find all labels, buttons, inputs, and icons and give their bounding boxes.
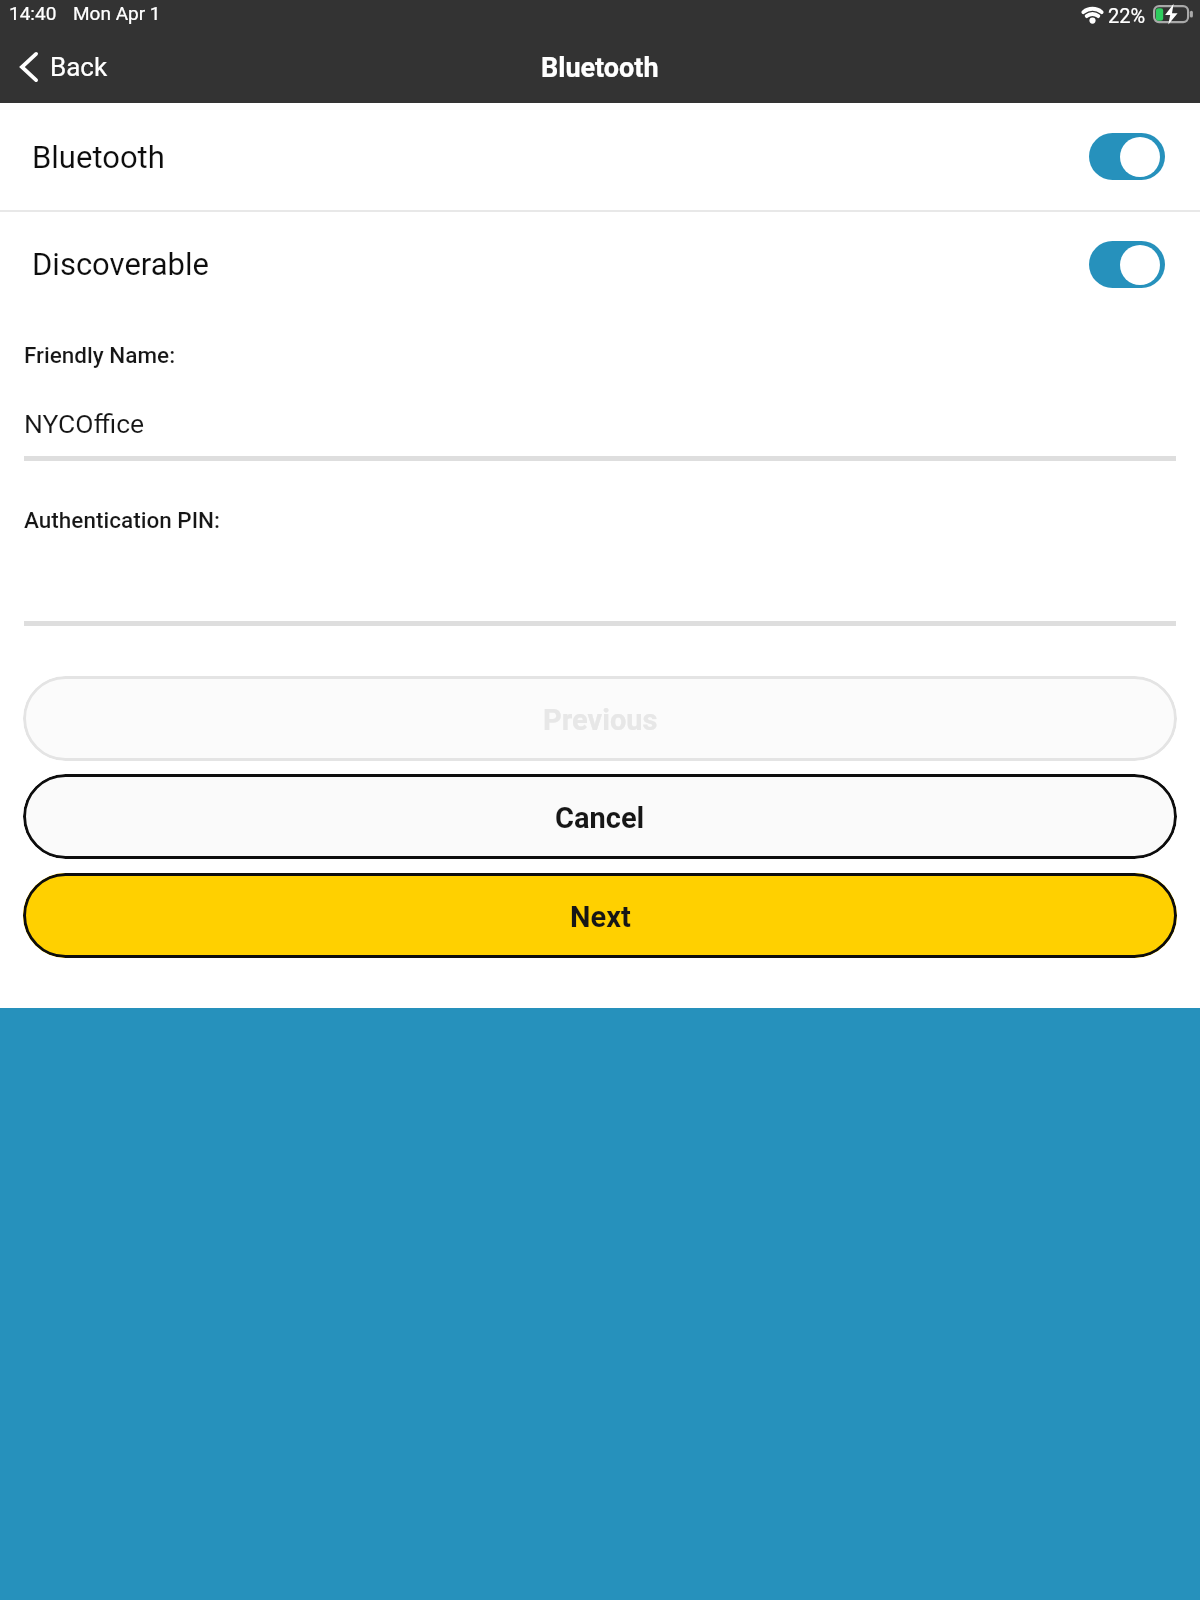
staticText: Mon Apr 1 xyxy=(73,2,161,24)
staticText: Cancel xyxy=(555,801,645,835)
staticText: Discoverable xyxy=(32,246,209,282)
button[interactable]: Discoverable on, toggle off xyxy=(1089,241,1165,288)
staticText: Bluetooth xyxy=(541,52,659,84)
button[interactable]: Cancel xyxy=(23,774,1177,859)
button[interactable]: Back xyxy=(0,43,126,91)
staticText: 22% xyxy=(1108,4,1146,27)
staticText: Next xyxy=(570,900,631,934)
button[interactable]: Discoverable xyxy=(0,212,1200,316)
staticText: Bluetooth xyxy=(32,139,165,175)
staticText: Back xyxy=(50,52,108,82)
staticText: Friendly Name: xyxy=(24,342,176,368)
staticText: 14:40 xyxy=(9,2,57,24)
staticText: Authentication PIN: xyxy=(24,507,221,533)
staticText: NYCOffice xyxy=(24,408,145,439)
button[interactable]: Bluetooth on, toggle off xyxy=(1089,133,1165,180)
button[interactable]: Next xyxy=(23,873,1177,958)
button[interactable]: Previous xyxy=(23,676,1177,761)
staticText: Previous xyxy=(543,703,658,737)
button[interactable]: Bluetooth xyxy=(0,103,1200,210)
